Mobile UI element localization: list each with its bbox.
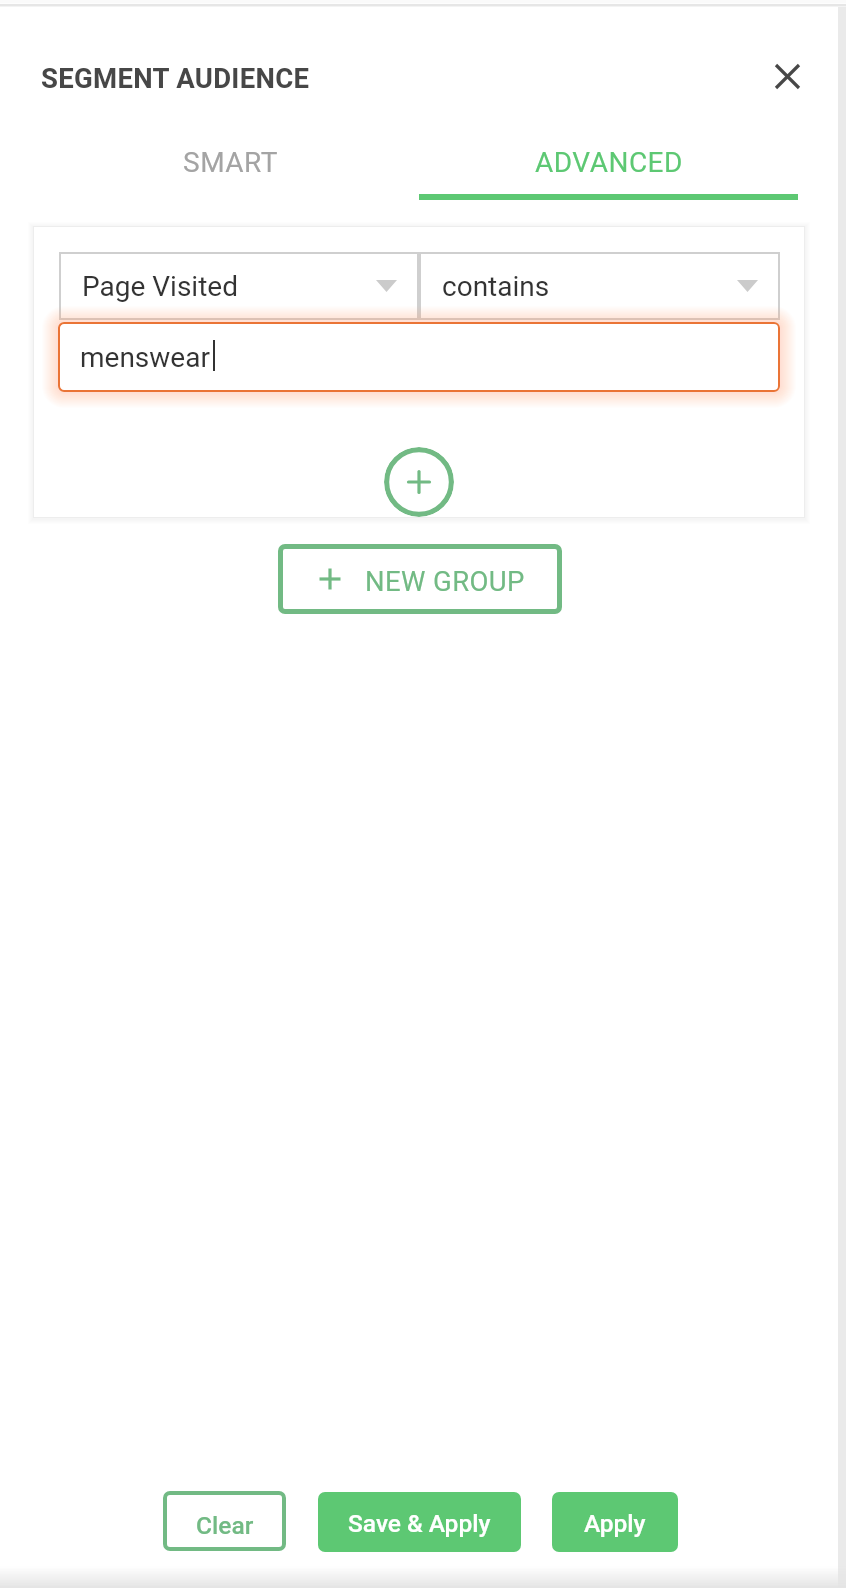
button[interactable]: Close: [762, 51, 812, 101]
button[interactable]: Page Visited: [59, 252, 419, 320]
staticText: Page Visited: [82, 270, 238, 303]
staticText: SEGMENT AUDIENCE: [41, 62, 310, 94]
staticText: Save & Apply: [348, 1509, 491, 1538]
staticText: NEW GROUP: [365, 565, 525, 597]
staticText: menswear: [80, 341, 210, 374]
staticText: contains: [442, 270, 550, 303]
button[interactable]: Save & Apply: [318, 1492, 521, 1552]
button[interactable]: contains: [419, 252, 780, 320]
staticText: ADVANCED: [535, 146, 683, 179]
staticText: SMART: [183, 146, 278, 179]
staticText: Apply: [584, 1509, 646, 1538]
button[interactable]: Add condition: [384, 447, 454, 517]
button[interactable]: SMART: [41, 132, 419, 200]
button[interactable]: ADVANCED: [419, 132, 798, 200]
button[interactable]: menswear: [58, 322, 780, 392]
button[interactable]: Clear: [163, 1491, 286, 1551]
button[interactable]: Apply: [552, 1492, 678, 1552]
button[interactable]: NEW GROUP: [278, 544, 562, 614]
staticText: Clear: [196, 1511, 254, 1540]
